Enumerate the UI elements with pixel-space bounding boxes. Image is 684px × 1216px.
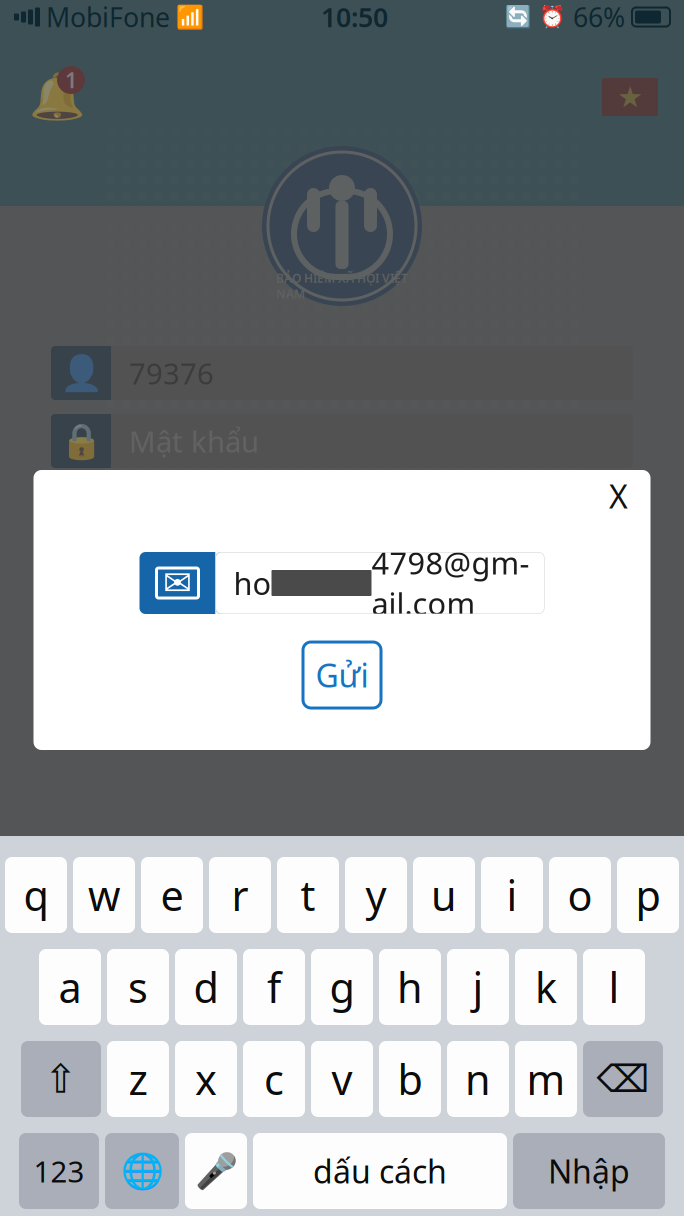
staticText: e xyxy=(160,868,183,922)
staticText: u xyxy=(431,868,457,922)
button[interactable]: d xyxy=(175,949,237,1025)
staticText: Gửi xyxy=(315,654,368,696)
staticText: 👤 xyxy=(59,353,102,393)
button[interactable]: Dictation xyxy=(185,1133,247,1209)
staticText: i xyxy=(506,868,517,922)
button[interactable]: k xyxy=(515,949,577,1025)
button[interactable]: m xyxy=(515,1041,577,1117)
staticText: BẢO HIỂM XÃ HỘI VIỆT NAM xyxy=(276,270,408,302)
button[interactable]: Nhập xyxy=(513,1133,665,1209)
staticText: r xyxy=(231,868,248,922)
staticText: X xyxy=(609,475,628,517)
staticText: 66% xyxy=(573,0,625,35)
button[interactable]: Language xyxy=(602,78,658,116)
button[interactable]: a xyxy=(39,949,101,1025)
staticText: Mật khẩu xyxy=(129,421,259,460)
staticText: k xyxy=(535,960,557,1014)
staticText: d xyxy=(193,960,218,1014)
staticText: 🌐 xyxy=(120,1151,163,1191)
button[interactable]: o xyxy=(549,857,611,933)
staticText: ★ xyxy=(617,80,643,114)
staticText: q xyxy=(23,868,48,922)
staticText: 📶 xyxy=(176,4,204,30)
button[interactable]: Close xyxy=(596,476,640,516)
button[interactable]: t xyxy=(277,857,339,933)
staticText: ⌫ xyxy=(596,1058,649,1100)
button[interactable]: Gửi xyxy=(303,642,381,708)
button[interactable]: v xyxy=(311,1041,373,1117)
staticText: dấu cách xyxy=(313,1150,447,1192)
staticText: t xyxy=(300,868,315,922)
button[interactable]: f xyxy=(243,949,305,1025)
staticText: b xyxy=(397,1052,422,1106)
button[interactable]: s xyxy=(107,949,169,1025)
staticText: ⏰ xyxy=(539,5,566,29)
button[interactable]: r xyxy=(209,857,271,933)
button[interactable]: i xyxy=(481,857,543,933)
staticText: m xyxy=(526,1052,565,1106)
staticText: y xyxy=(365,868,386,922)
button[interactable]: e xyxy=(141,857,203,933)
staticText: 123 xyxy=(33,1151,84,1190)
button[interactable]: g xyxy=(311,949,373,1025)
staticText: s xyxy=(128,960,148,1014)
button[interactable]: h xyxy=(379,949,441,1025)
button[interactable]: z xyxy=(107,1041,169,1117)
staticText: a xyxy=(58,960,81,1014)
button[interactable]: Delete xyxy=(583,1041,663,1117)
button[interactable]: n xyxy=(447,1041,509,1117)
staticText: 🎤 xyxy=(194,1151,237,1191)
staticText: j xyxy=(472,960,483,1014)
staticText: ho xyxy=(233,563,271,603)
staticText: w xyxy=(88,868,120,922)
button[interactable]: p xyxy=(617,857,679,933)
staticText: ⇧ xyxy=(44,1056,78,1102)
staticText: Nhập xyxy=(548,1150,630,1192)
button[interactable]: Notifications xyxy=(26,66,88,128)
staticText: o xyxy=(567,868,592,922)
staticText: MobiFone xyxy=(46,0,170,35)
staticText: 🔒 xyxy=(59,421,102,461)
button[interactable]: y xyxy=(345,857,407,933)
staticText: ✉ xyxy=(163,563,192,603)
staticText: v xyxy=(331,1052,352,1106)
button[interactable]: 123 xyxy=(19,1133,99,1209)
staticText: x xyxy=(195,1052,217,1106)
staticText: p xyxy=(635,868,660,922)
button[interactable]: l xyxy=(583,949,645,1025)
button[interactable]: dấu cách xyxy=(253,1133,507,1209)
staticText: 🔄 xyxy=(505,5,532,29)
staticText: z xyxy=(128,1052,147,1106)
button[interactable]: w xyxy=(73,857,135,933)
staticText: f xyxy=(267,960,281,1014)
button[interactable]: b xyxy=(379,1041,441,1117)
button[interactable]: j xyxy=(447,949,509,1025)
button[interactable]: Next keyboard xyxy=(105,1133,179,1209)
staticText: 10:50 xyxy=(321,0,388,35)
staticText: g xyxy=(329,960,354,1014)
button[interactable]: x xyxy=(175,1041,237,1117)
staticText: 🔔 xyxy=(29,71,85,123)
staticText: c xyxy=(264,1052,284,1106)
button[interactable]: c xyxy=(243,1041,305,1117)
button[interactable]: u xyxy=(413,857,475,933)
button[interactable]: q xyxy=(5,857,67,933)
staticText: 79376 xyxy=(129,353,214,392)
staticText: 4798@gmail.com xyxy=(371,542,529,624)
button[interactable]: Shift xyxy=(21,1041,101,1117)
staticText: 1 xyxy=(65,66,77,94)
staticText: h xyxy=(397,960,423,1014)
staticText: n xyxy=(465,1052,491,1106)
staticText: l xyxy=(608,960,619,1014)
